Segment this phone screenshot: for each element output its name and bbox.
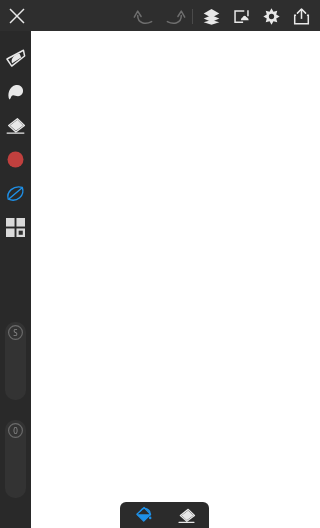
button[interactable]: Layers <box>196 2 226 30</box>
button[interactable]: Erase <box>166 502 206 528</box>
button[interactable]: Settings <box>256 2 286 30</box>
button[interactable]: Colour <box>0 145 31 173</box>
button[interactable]: Import image <box>226 2 256 30</box>
staticText: S <box>13 327 18 338</box>
button[interactable]: Slider 0 <box>5 420 26 498</box>
button[interactable]: Brush library <box>0 179 31 207</box>
button[interactable]: Slider S <box>5 322 26 400</box>
button[interactable]: Palette grid <box>0 213 31 241</box>
staticText: 0 <box>13 425 18 436</box>
button[interactable]: Smudge tool <box>0 77 31 105</box>
button[interactable]: Share <box>286 2 316 30</box>
button[interactable]: Undo <box>129 2 159 30</box>
button[interactable]: Fill <box>123 502 163 528</box>
button[interactable]: Close <box>4 3 30 29</box>
button[interactable]: Redo <box>159 2 189 30</box>
button[interactable]: Eraser tool <box>0 111 31 139</box>
button[interactable]: Marker tool <box>0 43 31 71</box>
